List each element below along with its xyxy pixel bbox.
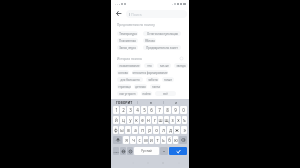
staticText: р	[148, 127, 151, 133]
button[interactable]: щ	[164, 116, 169, 124]
button[interactable]: ч	[130, 136, 136, 144]
button[interactable]: Предварительно замет	[143, 45, 181, 50]
button[interactable]: всё заключение	[155, 91, 176, 96]
button[interactable]: и	[164, 99, 189, 105]
button[interactable]: 8	[164, 106, 171, 114]
button[interactable]: м	[143, 136, 148, 144]
button[interactable]: это	[144, 63, 154, 68]
button[interactable]: ц	[120, 116, 126, 124]
button[interactable]: э	[181, 126, 187, 134]
button[interactable]: о	[153, 126, 159, 134]
button[interactable]: к	[134, 116, 139, 124]
button[interactable]: а	[132, 126, 138, 134]
button[interactable]: ы	[119, 126, 124, 134]
button[interactable]: з	[170, 116, 175, 124]
staticText: э	[183, 127, 186, 133]
staticText: и	[175, 100, 178, 105]
button[interactable]: найти	[141, 91, 152, 96]
button[interactable]: н	[146, 116, 151, 124]
button[interactable]: й	[113, 116, 119, 124]
button[interactable]: у	[127, 116, 133, 124]
button[interactable]: ф	[113, 126, 118, 134]
button[interactable]: как же	[157, 63, 171, 68]
button[interactable]: т	[155, 136, 160, 144]
button[interactable]: для большего важно	[117, 77, 143, 82]
staticText: ц	[122, 117, 125, 123]
staticText: т	[156, 137, 159, 143]
staticText: 2	[122, 107, 125, 113]
button[interactable]: 2	[120, 106, 126, 114]
button[interactable]: д	[167, 126, 173, 134]
button[interactable]: Плазменная кома	[117, 38, 138, 43]
staticText: страница	[118, 85, 131, 89]
staticText: н	[147, 117, 150, 123]
staticText: щ	[164, 117, 169, 123]
staticText: ы	[120, 127, 124, 133]
button[interactable]: Back	[111, 8, 126, 19]
button[interactable]: check	[169, 147, 187, 155]
button[interactable]: и	[149, 136, 154, 144]
button[interactable]: 7	[156, 106, 163, 114]
button[interactable]: 0	[180, 106, 187, 114]
button[interactable]: х	[176, 116, 181, 124]
button[interactable]: детская	[134, 84, 147, 89]
staticText: 5	[143, 107, 146, 113]
staticText: 0	[182, 107, 185, 113]
button[interactable]: как устроен мир	[117, 91, 138, 96]
button[interactable]: в	[125, 126, 131, 134]
button[interactable]: ш	[158, 116, 163, 124]
button[interactable]: del	[179, 136, 187, 144]
button[interactable]: emoji	[127, 147, 133, 155]
button[interactable]: 6	[148, 106, 155, 114]
staticText: в	[127, 127, 130, 133]
button[interactable]: п	[139, 126, 145, 134]
button[interactable]: ГОВОРИТ	[111, 99, 137, 105]
button[interactable]: с	[137, 136, 142, 144]
button[interactable]: звезда	[174, 63, 188, 68]
staticText: Остаточная пульпация	[147, 32, 178, 36]
button[interactable]: б	[167, 136, 172, 144]
button[interactable]: папка	[150, 84, 161, 89]
button[interactable]: 4	[134, 106, 140, 114]
button[interactable]: основа	[117, 70, 129, 75]
button[interactable]: ь	[161, 136, 166, 144]
button[interactable]: е	[140, 116, 145, 124]
button[interactable]: 3	[127, 106, 133, 114]
staticText: папка	[152, 85, 160, 89]
button[interactable]: dot	[160, 147, 168, 155]
button[interactable]: Остаточная пульпация	[143, 31, 181, 36]
button[interactable]: г	[152, 116, 157, 124]
button[interactable]: ?123	[113, 147, 119, 155]
button[interactable]: страница	[117, 84, 131, 89]
button[interactable]: заботы	[146, 77, 159, 82]
button[interactable]: ю	[173, 136, 178, 144]
staticText: Русский	[141, 149, 152, 153]
button[interactable]: shift	[113, 136, 122, 144]
button[interactable]: я	[123, 136, 129, 144]
button[interactable]: наименование	[117, 63, 141, 68]
button[interactable]: л	[160, 126, 166, 134]
button[interactable]: 1	[113, 106, 119, 114]
button[interactable]: 9	[172, 106, 179, 114]
staticText: й	[115, 117, 118, 123]
button[interactable]: ж	[174, 126, 180, 134]
button[interactable]: globe	[120, 147, 126, 155]
button[interactable]: 5	[141, 106, 147, 114]
staticText: 6	[150, 107, 153, 113]
button[interactable]: More options	[179, 56, 184, 61]
button[interactable]: также	[162, 77, 174, 82]
button[interactable]: р	[146, 126, 152, 134]
button[interactable]: Температура	[117, 31, 138, 36]
button[interactable]: Яблоко	[143, 38, 156, 43]
button[interactable]: Русский	[134, 147, 159, 155]
button[interactable]: Поиск	[126, 10, 187, 18]
button[interactable]: Запах, вкуса	[117, 45, 138, 50]
button[interactable]: относится формирование	[132, 70, 168, 75]
button[interactable]: в	[138, 99, 163, 105]
button[interactable]: ъ	[182, 116, 187, 124]
staticText: наименование	[119, 64, 140, 68]
